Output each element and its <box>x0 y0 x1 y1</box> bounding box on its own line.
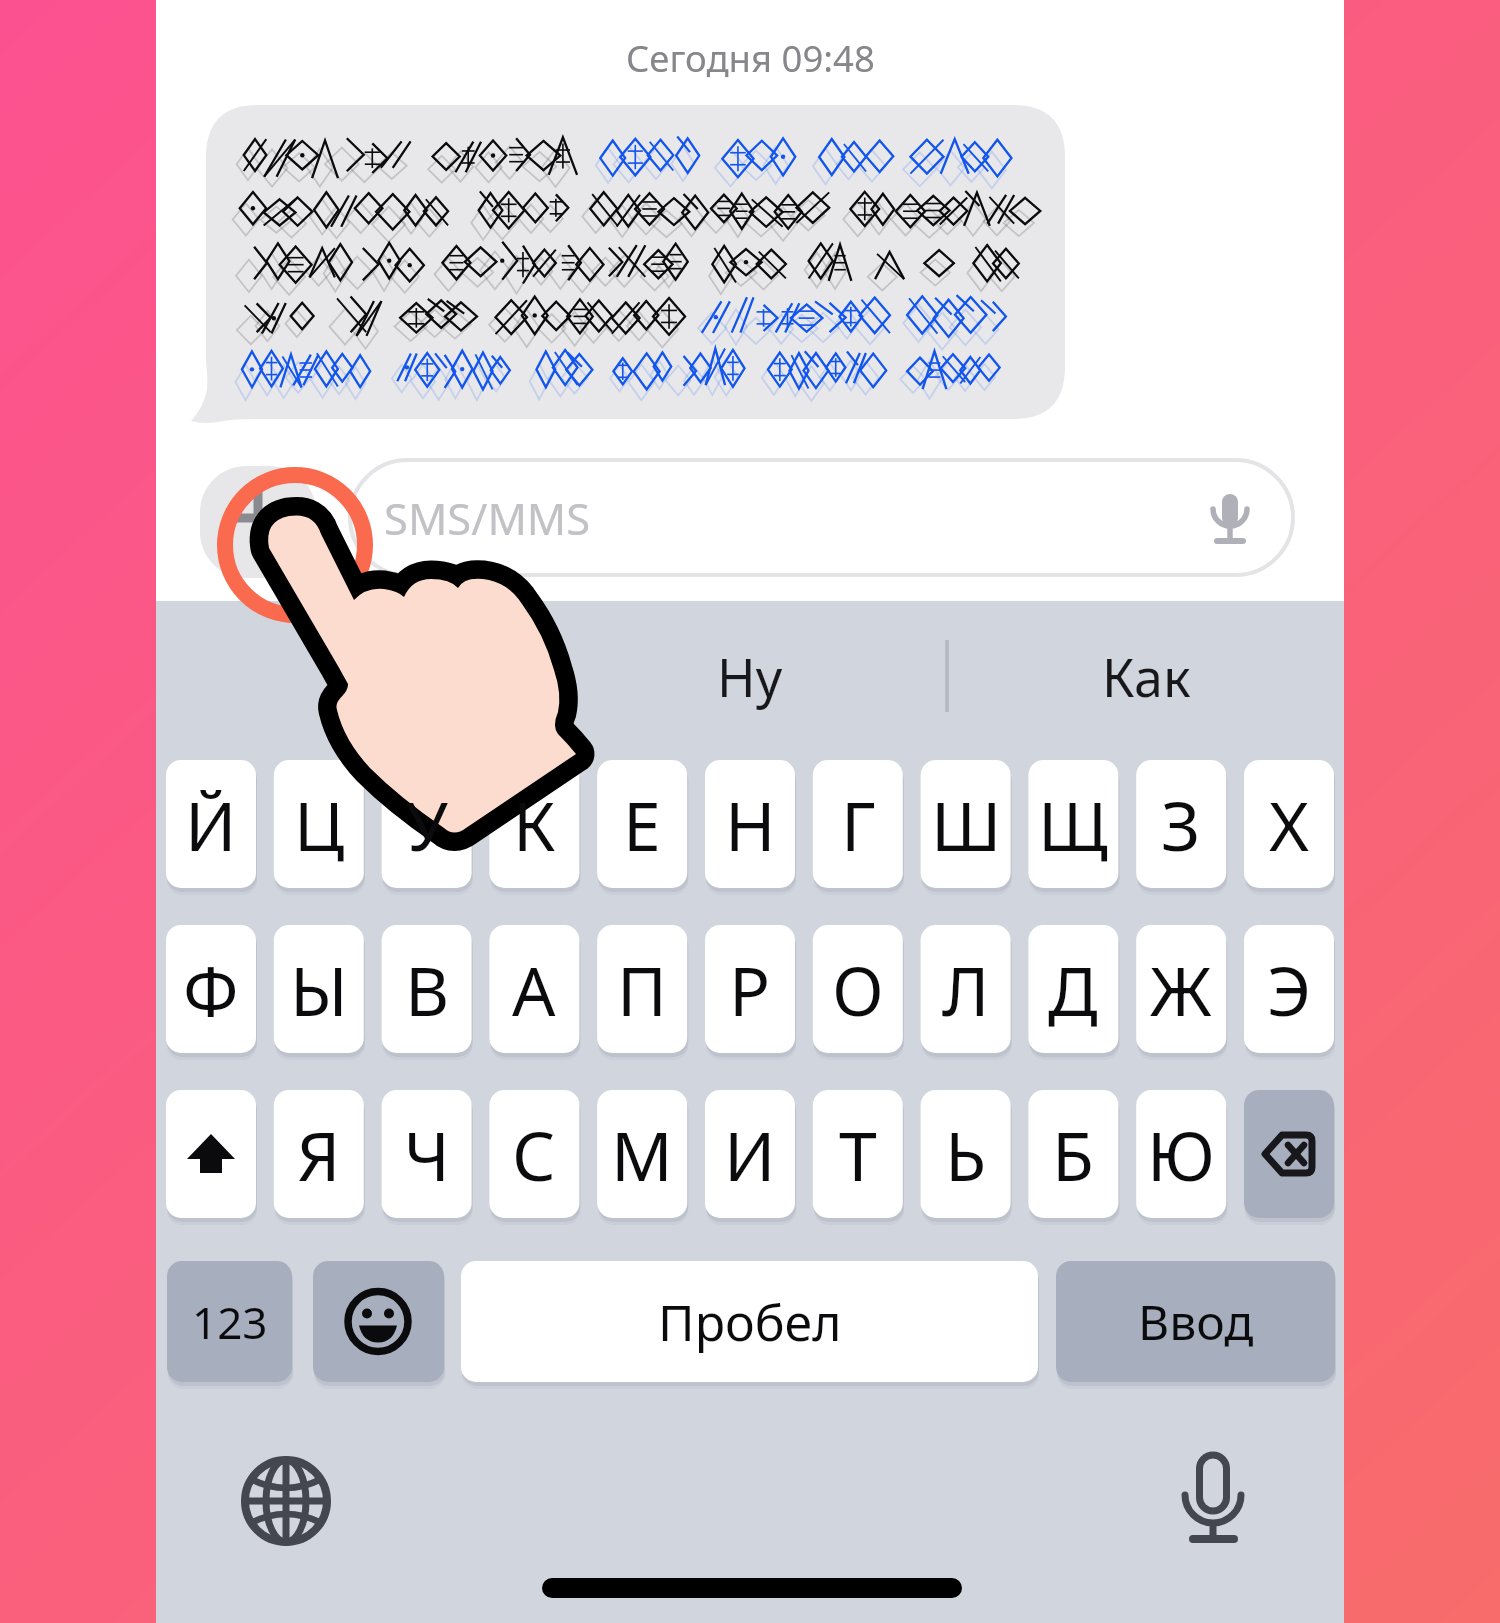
staticText: Т <box>839 1108 877 1201</box>
button[interactable]: Пробел <box>461 1261 1038 1382</box>
staticText: Р <box>729 943 771 1036</box>
staticText: Г <box>841 778 876 871</box>
button[interactable]: Д <box>1028 925 1118 1053</box>
button[interactable]: Ввод <box>1056 1261 1335 1382</box>
staticText: Ы <box>290 943 348 1036</box>
staticText: В <box>405 943 450 1036</box>
button[interactable]: Emoji <box>313 1261 444 1382</box>
staticText: М <box>611 1108 673 1201</box>
button[interactable]: Ш <box>921 760 1011 888</box>
staticText: Ц <box>294 778 345 871</box>
staticText: Ж <box>1150 943 1212 1036</box>
button[interactable]: Ю <box>1136 1090 1226 1218</box>
staticText: Д <box>1048 943 1098 1036</box>
button[interactable]: О <box>813 925 903 1053</box>
staticText: Ь <box>945 1108 987 1201</box>
staticText: Е <box>623 778 661 871</box>
button[interactable]: Л <box>921 925 1011 1053</box>
staticText: Ф <box>183 943 239 1036</box>
button[interactable]: Я <box>274 1090 364 1218</box>
button[interactable]: У <box>382 760 472 888</box>
button[interactable]: И <box>705 1090 795 1218</box>
button[interactable]: Ч <box>382 1090 472 1218</box>
button[interactable]: Х <box>1244 760 1334 888</box>
button[interactable]: К <box>489 760 579 888</box>
staticText: Ввод <box>1138 1289 1254 1354</box>
button[interactable]: А <box>489 925 579 1053</box>
staticText: Л <box>942 943 990 1036</box>
button[interactable]: Voice input <box>1155 1441 1271 1561</box>
button[interactable]: Г <box>813 760 903 888</box>
staticText: Б <box>1052 1108 1094 1201</box>
staticText: SMS/MMS <box>384 488 591 547</box>
staticText: Х <box>1269 778 1309 871</box>
button[interactable]: 123 <box>167 1261 292 1382</box>
staticText: Ну <box>717 641 783 712</box>
button[interactable]: П <box>597 925 687 1053</box>
button[interactable]: Т <box>813 1090 903 1218</box>
staticText: У <box>406 778 448 871</box>
button[interactable]: Ц <box>274 760 364 888</box>
button[interactable]: Как <box>1006 616 1286 736</box>
button[interactable]: Ы <box>274 925 364 1053</box>
staticText: А <box>512 943 556 1036</box>
button[interactable]: Э <box>1244 925 1334 1053</box>
button[interactable]: Backspace <box>1244 1090 1334 1218</box>
staticText: Пробел <box>658 1288 842 1356</box>
staticText: И <box>724 1108 776 1201</box>
staticText: Ю <box>1147 1108 1215 1201</box>
button[interactable]: Щ <box>1028 760 1118 888</box>
button[interactable]: Ж <box>1136 925 1226 1053</box>
button[interactable]: Р <box>705 925 795 1053</box>
staticText: С <box>512 1108 556 1201</box>
staticText: 123 <box>192 1292 268 1352</box>
button[interactable]: Й <box>166 760 256 888</box>
staticText: Ч <box>404 1108 450 1201</box>
button[interactable]: Е <box>597 760 687 888</box>
staticText: Н <box>725 778 776 871</box>
button[interactable]: Voice message <box>1186 466 1276 566</box>
staticText: Как <box>1102 641 1191 712</box>
button[interactable]: Add attachment <box>200 466 316 578</box>
button[interactable]: Shift <box>166 1090 256 1218</box>
staticText: Ш <box>931 778 1002 871</box>
staticText: Щ <box>1038 778 1108 871</box>
staticText: Я <box>297 1108 341 1201</box>
staticText: Й <box>185 778 237 871</box>
button[interactable]: Б <box>1028 1090 1118 1218</box>
button[interactable]: Change language <box>226 1441 346 1561</box>
button[interactable]: З <box>1136 760 1226 888</box>
button[interactable]: Н <box>705 760 795 888</box>
staticText: З <box>1161 778 1201 871</box>
button[interactable]: М <box>597 1090 687 1218</box>
button[interactable]: В <box>382 925 472 1053</box>
button[interactable]: Ну <box>610 616 890 736</box>
staticText: Э <box>1267 943 1311 1036</box>
staticText: П <box>617 943 667 1036</box>
button[interactable]: Ь <box>921 1090 1011 1218</box>
button[interactable]: Ф <box>166 925 256 1053</box>
staticText: О <box>832 943 884 1036</box>
staticText: Сегодня 09:48 <box>626 33 875 83</box>
staticText: К <box>513 778 556 871</box>
button[interactable]: С <box>489 1090 579 1218</box>
